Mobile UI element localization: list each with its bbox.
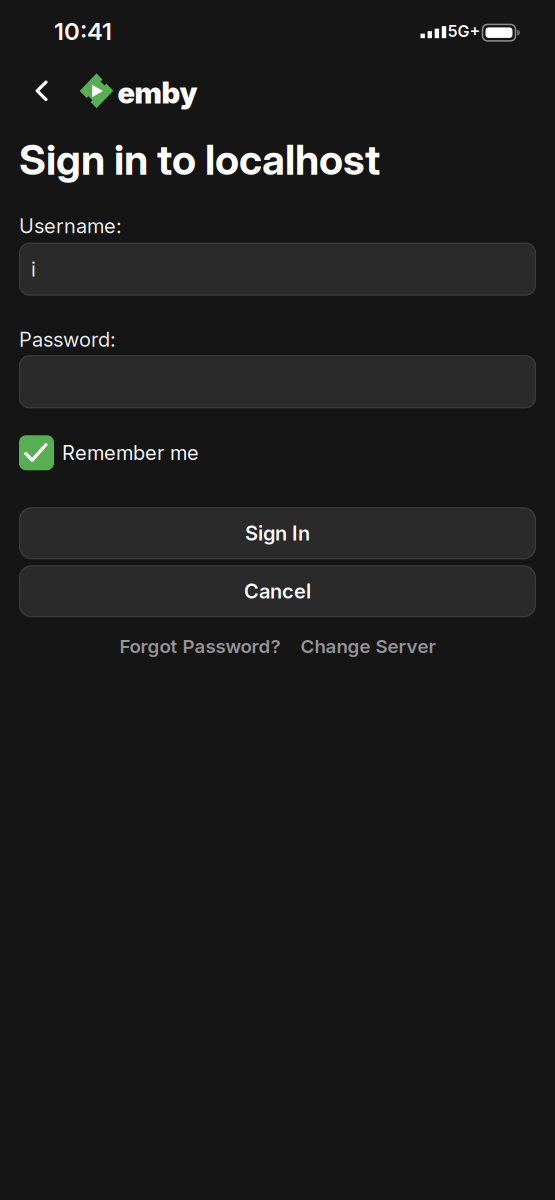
staticText: Username:: [19, 214, 122, 238]
button[interactable]: [35, 80, 48, 101]
button[interactable]: Cancel: [19, 565, 536, 617]
staticText: emby: [117, 75, 197, 110]
staticText: Change Server: [300, 635, 435, 657]
button[interactable]: Forgot Password?: [119, 635, 280, 657]
staticText: 10:41: [54, 17, 112, 45]
staticText: Sign in to localhost: [19, 135, 380, 184]
button[interactable]: Change Server: [300, 635, 435, 657]
staticText: i: [31, 257, 36, 281]
staticText: Remember me: [62, 441, 199, 465]
staticText: Sign In: [245, 521, 310, 545]
staticText: Forgot Password?: [119, 635, 280, 657]
staticText: Cancel: [244, 579, 311, 603]
staticText: Password:: [19, 328, 116, 351]
staticText: 5G+: [447, 22, 480, 41]
button[interactable]: i: [19, 243, 536, 296]
button[interactable]: Sign In: [19, 507, 536, 559]
button[interactable]: Remember me: [19, 435, 199, 470]
button[interactable]: [19, 355, 536, 408]
